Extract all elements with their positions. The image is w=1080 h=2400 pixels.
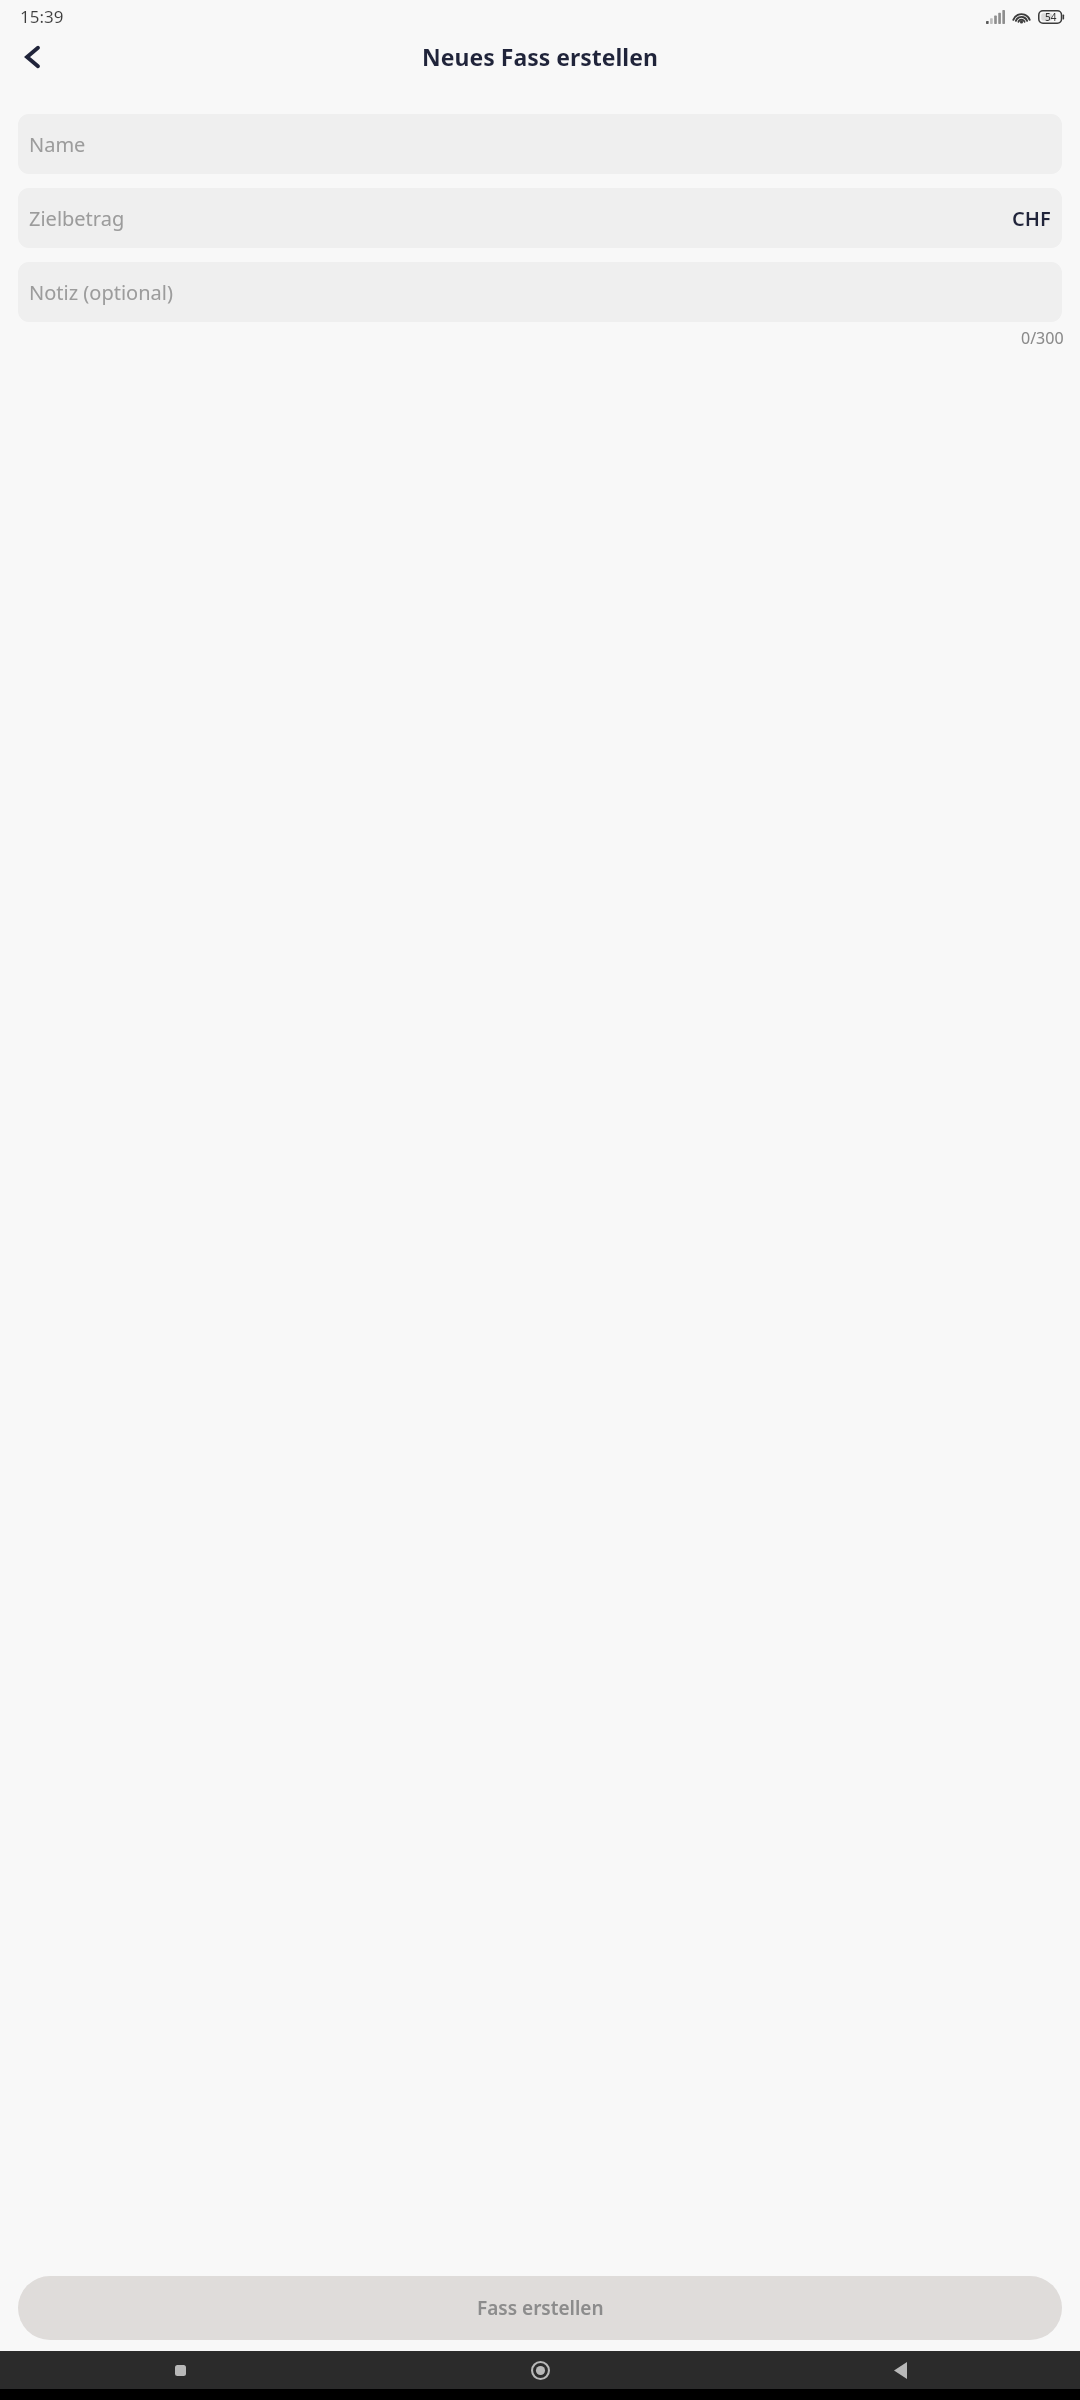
button[interactable]: Fass erstellen bbox=[18, 2276, 1062, 2340]
button[interactable]: Back bbox=[8, 33, 56, 80]
staticText: 15:39 bbox=[20, 5, 64, 28]
staticText: Fass erstellen bbox=[477, 2295, 604, 2321]
staticText: Name bbox=[29, 131, 86, 158]
button[interactable]: Zielbetrag bbox=[18, 188, 1062, 248]
staticText: 54 bbox=[1045, 10, 1057, 24]
staticText: Neues Fass erstellen bbox=[422, 41, 658, 72]
button[interactable]: Name bbox=[18, 114, 1062, 174]
staticText: Zielbetrag bbox=[29, 205, 125, 232]
staticText: Notiz (optional) bbox=[29, 279, 173, 306]
staticText: CHF bbox=[1012, 205, 1051, 232]
button[interactable]: Notiz (optional) bbox=[18, 262, 1062, 322]
button[interactable]: Back bbox=[720, 2351, 1080, 2389]
staticText: 0/300 bbox=[1021, 327, 1064, 349]
button[interactable]: Recent apps bbox=[0, 2351, 360, 2389]
button[interactable]: Home bbox=[360, 2351, 720, 2389]
